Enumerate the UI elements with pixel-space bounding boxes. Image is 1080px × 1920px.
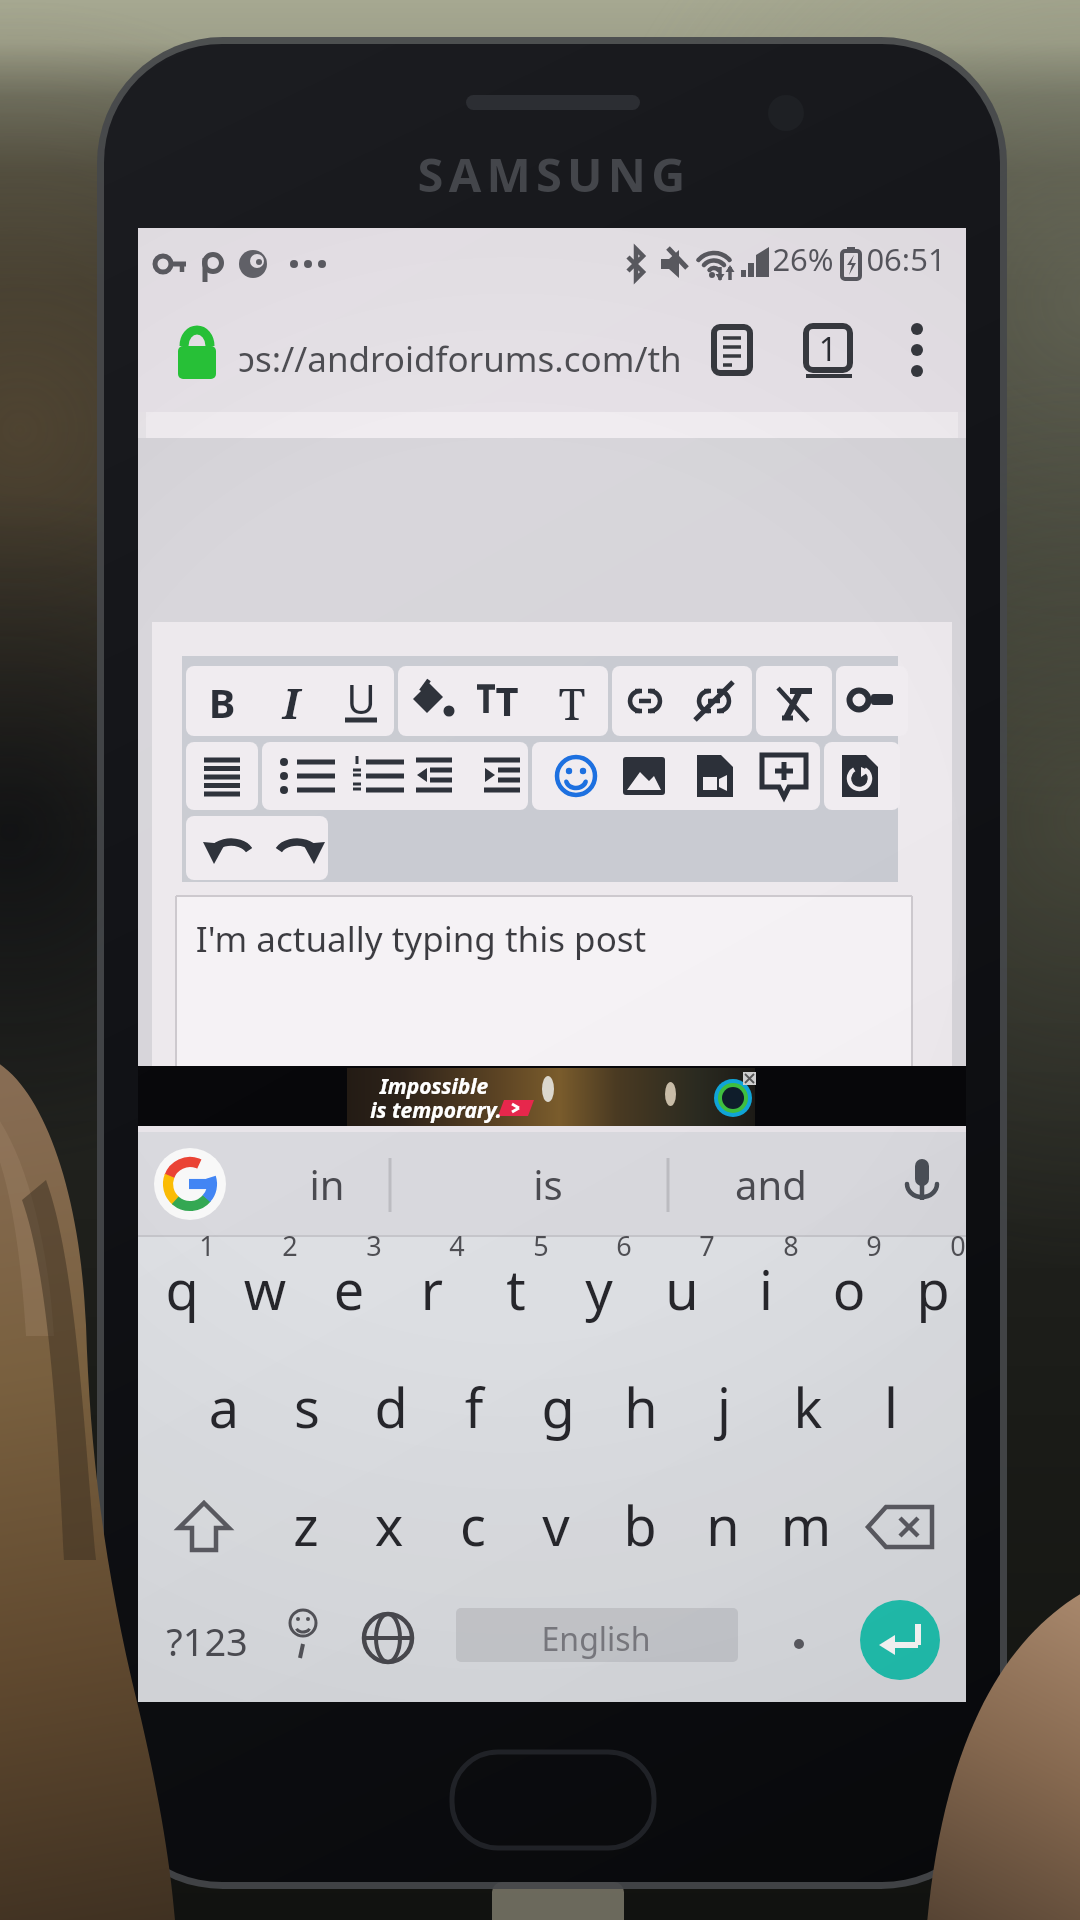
button[interactable]: More options: [886, 314, 950, 386]
button[interactable]: d: [350, 1366, 432, 1460]
button[interactable]: is: [392, 1140, 666, 1228]
button[interactable]: i: [725, 1248, 807, 1342]
button[interactable]: Google search: [152, 1144, 230, 1222]
button[interactable]: l: [850, 1366, 932, 1460]
staticText: in: [267, 1157, 387, 1211]
button[interactable]: Period: [758, 1598, 840, 1690]
staticText: and: [701, 1157, 841, 1211]
staticText: 8: [731, 1227, 851, 1264]
button[interactable]: Tabs, 1 open: [792, 314, 864, 386]
button[interactable]: w: [224, 1248, 306, 1342]
button[interactable]: Underline: [326, 666, 394, 736]
button[interactable]: m: [765, 1484, 847, 1578]
staticText: e: [289, 1252, 409, 1326]
staticText: j: [664, 1370, 784, 1444]
button[interactable]: Backspace: [854, 1484, 960, 1578]
button[interactable]: Emoji and comma: [268, 1598, 340, 1690]
button[interactable]: Shift: [152, 1484, 258, 1578]
staticText: m: [746, 1488, 866, 1562]
button[interactable]: Numbered list: [328, 742, 396, 810]
staticText: SAMSUNG: [344, 142, 764, 206]
button[interactable]: t: [475, 1248, 557, 1342]
staticText: 06:51: [826, 238, 986, 280]
staticText: t: [456, 1252, 576, 1326]
button[interactable]: k: [767, 1366, 849, 1460]
button[interactable]: Font family: [538, 666, 608, 736]
staticText: l: [831, 1370, 951, 1444]
button[interactable]: Enter: [858, 1598, 942, 1690]
button[interactable]: e: [308, 1248, 390, 1342]
button[interactable]: o: [808, 1248, 890, 1342]
button[interactable]: Insert item: [746, 742, 820, 810]
button[interactable]: Advertisement: Impossible is temporary: [347, 1068, 755, 1126]
button[interactable]: Bold: [186, 666, 256, 736]
staticText: 2: [230, 1227, 350, 1264]
staticText: 26%: [743, 238, 863, 280]
staticText: B: [182, 675, 262, 729]
button[interactable]: f: [433, 1366, 515, 1460]
button[interactable]: in: [240, 1140, 388, 1228]
staticText: g: [498, 1370, 618, 1444]
button[interactable]: b: [599, 1484, 681, 1578]
button[interactable]: g: [517, 1366, 599, 1460]
staticText: n: [663, 1488, 783, 1562]
staticText: r: [372, 1252, 492, 1326]
button[interactable]: Increase indent: [462, 742, 528, 810]
button[interactable]: h: [600, 1366, 682, 1460]
staticText: i: [706, 1252, 826, 1326]
button[interactable]: Restore draft: [824, 742, 900, 810]
staticText: 9: [814, 1227, 934, 1264]
button[interactable]: Symbols: [152, 1598, 266, 1690]
staticText: y: [539, 1252, 659, 1326]
button[interactable]: Insert emoji: [532, 742, 602, 810]
staticText: x: [329, 1488, 449, 1562]
staticText: z: [246, 1488, 366, 1562]
button[interactable]: Space, English: [456, 1604, 738, 1666]
button[interactable]: n: [682, 1484, 764, 1578]
button[interactable]: q: [141, 1248, 223, 1342]
staticText: 3: [314, 1227, 434, 1264]
button[interactable]: and: [670, 1140, 850, 1228]
button[interactable]: Voice input: [876, 1140, 960, 1228]
button[interactable]: r: [391, 1248, 473, 1342]
button[interactable]: Remove link: [682, 666, 752, 736]
button[interactable]: Redo: [257, 816, 328, 880]
staticText: q: [122, 1252, 242, 1326]
button[interactable]: Insert link: [612, 666, 682, 736]
staticText: d: [331, 1370, 451, 1444]
button[interactable]: Reader mode: [700, 314, 766, 386]
staticText: h: [581, 1370, 701, 1444]
button[interactable]: Font size: [468, 666, 538, 736]
button[interactable]: Message body: I'm actually typing this p…: [176, 896, 912, 1066]
button[interactable]: Decrease indent: [396, 742, 462, 810]
button[interactable]: Insert video: [674, 742, 746, 810]
staticText: f: [414, 1370, 534, 1444]
staticText: 0: [898, 1227, 1018, 1264]
button[interactable]: j: [683, 1366, 765, 1460]
button[interactable]: y: [558, 1248, 640, 1342]
button[interactable]: Italic: [256, 666, 326, 736]
button[interactable]: Change language: [348, 1598, 432, 1690]
button[interactable]: Address bar https://androidforums.com/th: [160, 312, 690, 388]
button[interactable]: Bulleted list: [262, 742, 328, 810]
button[interactable]: x: [348, 1484, 430, 1578]
button[interactable]: v: [515, 1484, 597, 1578]
staticText: a: [164, 1370, 284, 1444]
button[interactable]: Align justify: [186, 742, 258, 810]
staticText: T: [467, 673, 547, 727]
button[interactable]: p: [892, 1248, 974, 1342]
button[interactable]: Inline code: [836, 666, 908, 736]
button[interactable]: Undo: [186, 816, 257, 880]
button[interactable]: Insert image: [602, 742, 674, 810]
button[interactable]: Close advertisement: [740, 1069, 760, 1089]
button[interactable]: z: [265, 1484, 347, 1578]
button[interactable]: c: [432, 1484, 514, 1578]
button[interactable]: s: [266, 1366, 348, 1460]
staticText: b: [580, 1488, 700, 1562]
button[interactable]: a: [183, 1366, 265, 1460]
staticText: I: [251, 674, 331, 731]
staticText: English: [486, 1617, 706, 1661]
button[interactable]: u: [641, 1248, 723, 1342]
button[interactable]: Text colour: [398, 666, 468, 736]
button[interactable]: Clear formatting: [756, 666, 832, 736]
